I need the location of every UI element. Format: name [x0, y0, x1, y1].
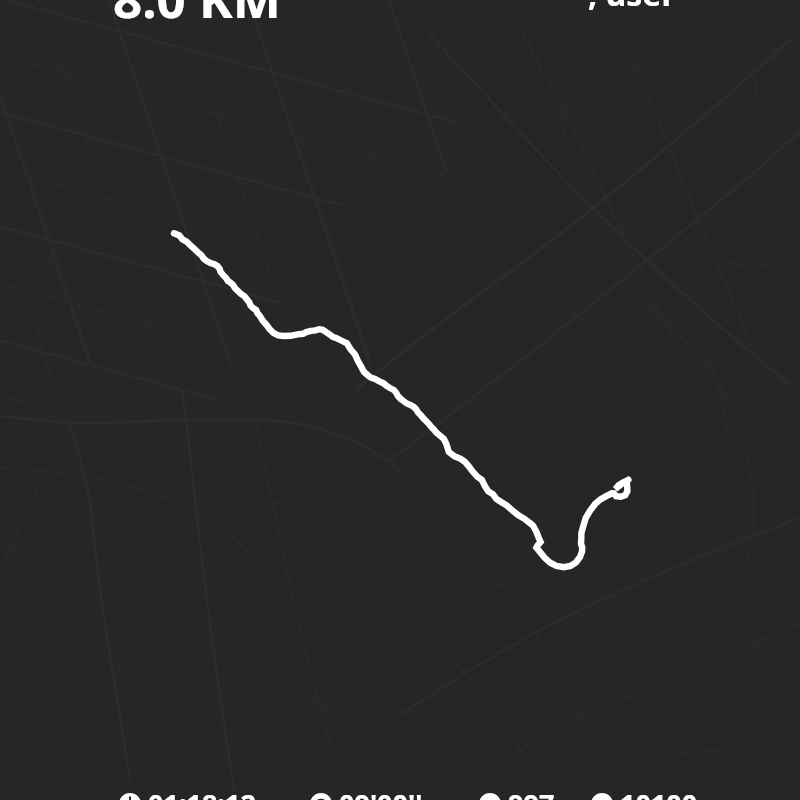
button[interactable]: 8.0 KM: [113, 0, 281, 32]
staticText: 01:18:12: [148, 785, 256, 800]
staticText: 10100: [620, 785, 698, 800]
button[interactable]: Calories: [479, 785, 555, 800]
staticText: 997: [508, 785, 555, 800]
button[interactable]: Steps: [591, 785, 698, 800]
staticText: , user: [588, 0, 676, 16]
button[interactable]: , user: [588, 0, 676, 16]
staticText: 8.0 KM: [113, 0, 281, 32]
button[interactable]: Pace: [310, 785, 423, 800]
staticText: 09'00'': [339, 785, 423, 800]
button[interactable]: Duration: [119, 785, 256, 800]
